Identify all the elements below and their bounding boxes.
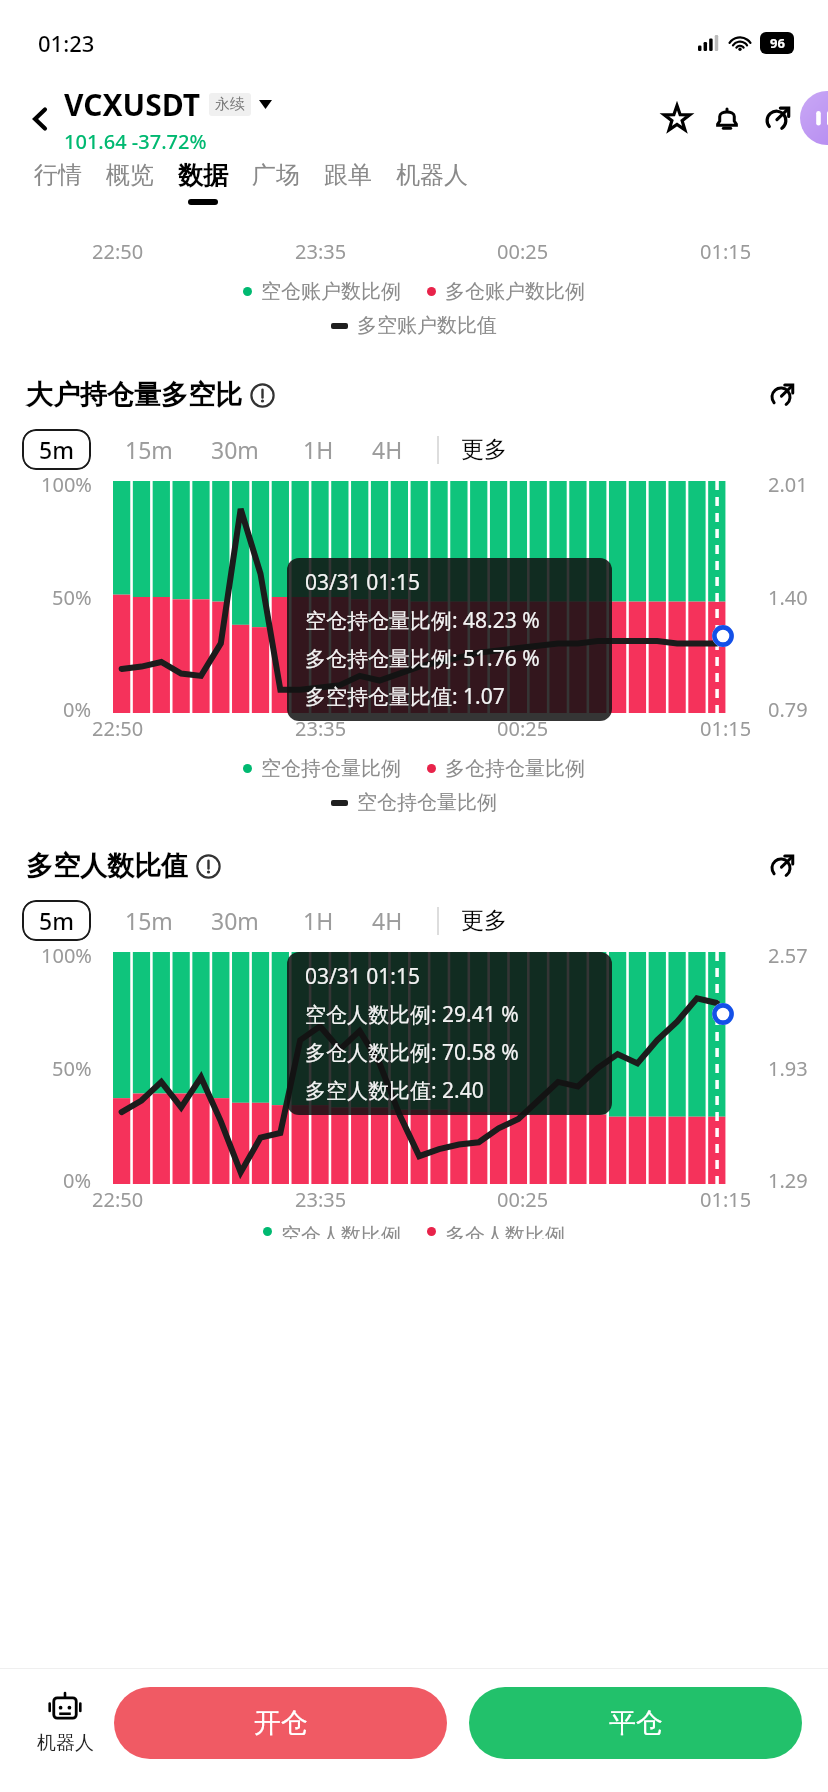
staticText: 多空人数比值: 2.40 (305, 1076, 484, 1105)
button[interactable]: 5m (22, 429, 91, 470)
staticText: 广场 (252, 160, 300, 190)
staticText: 00:25 (497, 1186, 549, 1213)
button[interactable]: Alerts (702, 94, 752, 144)
button[interactable]: 跟单 (314, 160, 382, 198)
staticText: 4H (372, 434, 403, 465)
button[interactable]: 更多 (461, 906, 507, 935)
staticText: 30m (211, 434, 259, 465)
staticText: 00:25 (497, 715, 549, 742)
button[interactable]: Open 多空人数比值 (760, 845, 802, 887)
staticText: 100% (41, 942, 92, 969)
button[interactable]: 平仓 (469, 1687, 802, 1759)
staticText: 22:50 (92, 238, 144, 265)
staticText: 机器人 (396, 160, 468, 190)
button[interactable]: 行情 (24, 160, 92, 198)
staticText: 22:50 (92, 715, 144, 742)
staticText: 100% (41, 471, 92, 498)
staticText: 5m (39, 434, 74, 465)
staticText: 1H (303, 434, 334, 465)
staticText: 概览 (106, 160, 154, 190)
button[interactable]: 大户持仓量多空比 (26, 374, 802, 416)
staticText: 0% (63, 696, 92, 723)
staticText: 空仓持仓量比例 (261, 756, 401, 781)
staticText: 1.93 (768, 1055, 808, 1082)
button[interactable]: 4H (368, 428, 407, 471)
staticText: 0% (63, 1167, 92, 1194)
staticText: 01:15 (700, 715, 752, 742)
staticText: 平仓 (609, 1706, 663, 1740)
staticText: 多空持仓量比值: 1.07 (305, 682, 505, 711)
staticText: 15m (125, 905, 173, 936)
staticText: 00:25 (497, 238, 549, 265)
staticText: 4H (372, 905, 403, 936)
button[interactable]: 更多 (461, 435, 507, 464)
button[interactable]: 开仓 (114, 1687, 447, 1759)
staticText: 更多 (461, 435, 507, 464)
staticText: 永续 (215, 95, 245, 114)
staticText: 大户持仓量多空比 (26, 378, 242, 412)
staticText: 03/31 01:15 (305, 962, 420, 991)
button[interactable]: 15m (121, 428, 177, 471)
button[interactable]: 30m (207, 428, 263, 471)
staticText: 更多 (461, 906, 507, 935)
staticText: 96 (770, 34, 785, 52)
staticText: 多仓持仓量比例: 51.76 % (305, 644, 540, 673)
button[interactable]: AI assistant (800, 91, 828, 145)
button[interactable]: 1H (299, 428, 338, 471)
button[interactable]: 机器人 (386, 160, 478, 198)
staticText: 0.79 (768, 696, 808, 723)
button[interactable]: 机器人 (22, 1692, 108, 1755)
staticText: 23:35 (295, 238, 347, 265)
staticText: 01:15 (700, 238, 752, 265)
staticText: 行情 (34, 160, 82, 190)
staticText: 1.29 (768, 1167, 808, 1194)
button[interactable]: 15m (121, 899, 177, 942)
staticText: 多仓持仓量比例 (445, 756, 585, 781)
staticText: 01:23 (38, 28, 95, 58)
button[interactable]: 30m (207, 899, 263, 942)
staticText: 空仓人数比例 (281, 1223, 401, 1239)
staticText: 空仓持仓量比例 (357, 790, 497, 815)
button[interactable]: 广场 (242, 160, 310, 198)
staticText: 跟单 (324, 160, 372, 190)
staticText: 22:50 (92, 1186, 144, 1213)
staticText: 101.64 -37.72% (64, 128, 207, 155)
staticText: 23:35 (295, 715, 347, 742)
staticText: 多仓人数比例: 70.58 % (305, 1038, 519, 1067)
staticText: 空仓账户数比例 (261, 279, 401, 304)
staticText: 机器人 (37, 1731, 94, 1755)
staticText: 1.40 (768, 584, 808, 611)
staticText: 2.01 (768, 471, 808, 498)
button[interactable]: Back (18, 96, 64, 142)
staticText: 30m (211, 905, 259, 936)
staticText: 多空人数比值 (26, 849, 188, 883)
staticText: 50% (52, 1055, 92, 1082)
staticText: 23:35 (295, 1186, 347, 1213)
button[interactable]: Favorite (652, 94, 702, 144)
staticText: 03/31 01:15 (305, 568, 420, 597)
staticText: 1H (303, 905, 334, 936)
button[interactable]: Open 大户持仓量多空比 (760, 374, 802, 416)
staticText: 15m (125, 434, 173, 465)
staticText: 开仓 (254, 1706, 308, 1740)
staticText: 数据 (178, 160, 228, 191)
staticText: 多仓账户数比例 (445, 279, 585, 304)
button[interactable]: 1H (299, 899, 338, 942)
button[interactable]: Share (752, 94, 802, 144)
staticText: 2.57 (768, 942, 808, 969)
staticText: 50% (52, 584, 92, 611)
staticText: VCXUSDT (64, 84, 201, 125)
staticText: 多空账户数比值 (357, 313, 497, 338)
button[interactable]: 5m (22, 900, 91, 941)
staticText: 空仓持仓量比例: 48.23 % (305, 606, 540, 635)
staticText: 空仓人数比例: 29.41 % (305, 1000, 519, 1029)
button[interactable]: 概览 (96, 160, 164, 198)
button[interactable]: 数据 (168, 160, 238, 205)
staticText: 01:15 (700, 1186, 752, 1213)
staticText: 多仓人数比例 (445, 1223, 565, 1239)
button[interactable]: 4H (368, 899, 407, 942)
staticText: 5m (39, 905, 74, 936)
button[interactable]: 多空人数比值 (26, 845, 802, 887)
